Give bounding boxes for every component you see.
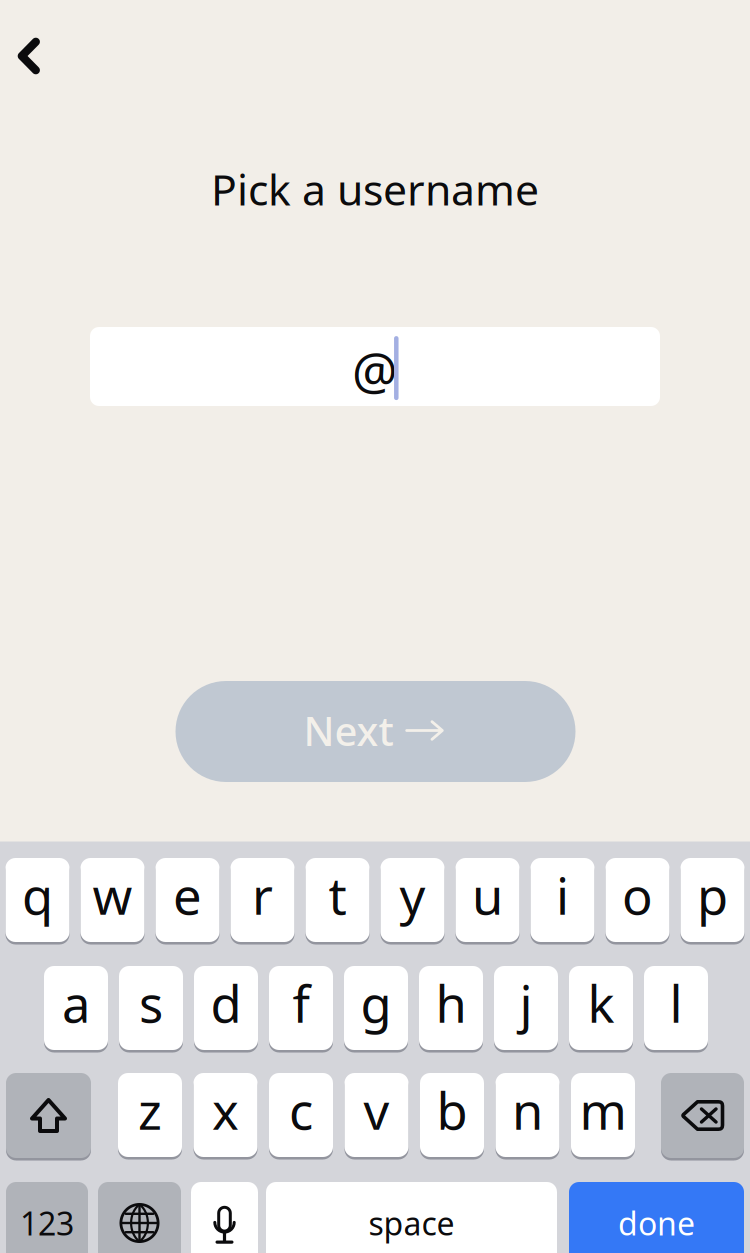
staticText: m bbox=[579, 1076, 626, 1144]
staticText: a bbox=[62, 969, 90, 1037]
staticText: o bbox=[622, 861, 653, 929]
button[interactable]: g bbox=[344, 966, 408, 1050]
button[interactable]: done bbox=[569, 1182, 744, 1253]
staticText: g bbox=[360, 969, 391, 1037]
button[interactable]: r bbox=[230, 858, 294, 942]
staticText: p bbox=[697, 861, 728, 929]
button[interactable]: a bbox=[44, 966, 108, 1050]
button[interactable]: x bbox=[193, 1073, 257, 1157]
staticText: w bbox=[92, 861, 132, 929]
button[interactable]: Numbers bbox=[6, 1182, 88, 1253]
button[interactable]: y bbox=[380, 858, 444, 942]
button[interactable]: Back bbox=[0, 16, 69, 96]
button[interactable]: c bbox=[269, 1073, 333, 1157]
button[interactable]: space bbox=[266, 1182, 557, 1253]
staticText: Next bbox=[303, 704, 393, 757]
button[interactable]: p bbox=[680, 858, 744, 942]
staticText: q bbox=[22, 861, 53, 929]
staticText: z bbox=[138, 1076, 162, 1144]
staticText: x bbox=[212, 1076, 239, 1144]
button[interactable]: o bbox=[605, 858, 669, 942]
staticText: done bbox=[618, 1202, 695, 1244]
staticText: @ bbox=[352, 337, 398, 404]
staticText: v bbox=[363, 1076, 389, 1144]
button[interactable]: u bbox=[455, 858, 519, 942]
staticText: u bbox=[472, 861, 503, 929]
staticText: space bbox=[368, 1202, 454, 1244]
button[interactable]: n bbox=[495, 1073, 559, 1157]
staticText: l bbox=[669, 969, 682, 1037]
button[interactable]: m bbox=[571, 1073, 635, 1157]
staticText: c bbox=[289, 1076, 313, 1144]
button[interactable]: v bbox=[344, 1073, 408, 1157]
button[interactable]: j bbox=[494, 966, 558, 1050]
staticText: f bbox=[292, 969, 309, 1037]
staticText: s bbox=[139, 969, 163, 1037]
button[interactable]: q bbox=[5, 858, 69, 942]
button[interactable]: Delete bbox=[661, 1073, 744, 1158]
button[interactable]: h bbox=[419, 966, 483, 1050]
staticText: y bbox=[399, 861, 425, 929]
button[interactable]: s bbox=[119, 966, 183, 1050]
button[interactable]: b bbox=[420, 1073, 484, 1157]
staticText: e bbox=[173, 861, 202, 929]
button[interactable]: Next keyboard bbox=[98, 1182, 181, 1253]
button[interactable]: Dictation bbox=[191, 1182, 258, 1253]
staticText: d bbox=[210, 969, 241, 1037]
staticText: i bbox=[556, 861, 569, 929]
button[interactable]: k bbox=[569, 966, 633, 1050]
button[interactable]: e bbox=[155, 858, 219, 942]
button[interactable]: f bbox=[269, 966, 333, 1050]
button[interactable]: l bbox=[644, 966, 708, 1050]
staticText: j bbox=[519, 969, 532, 1037]
staticText: t bbox=[328, 861, 346, 929]
button[interactable]: t bbox=[305, 858, 369, 942]
staticText: b bbox=[436, 1076, 467, 1144]
staticText: n bbox=[512, 1076, 543, 1144]
staticText: Pick a username bbox=[211, 161, 539, 217]
button[interactable]: w bbox=[80, 858, 144, 942]
staticText: 123 bbox=[20, 1202, 74, 1244]
button[interactable]: i bbox=[530, 858, 594, 942]
button[interactable]: Next bbox=[175, 681, 575, 782]
staticText: k bbox=[587, 969, 614, 1037]
staticText: r bbox=[252, 861, 273, 929]
button[interactable]: Shift bbox=[6, 1073, 91, 1158]
button[interactable]: z bbox=[118, 1073, 182, 1157]
staticText: h bbox=[435, 969, 466, 1037]
button[interactable]: d bbox=[194, 966, 258, 1050]
